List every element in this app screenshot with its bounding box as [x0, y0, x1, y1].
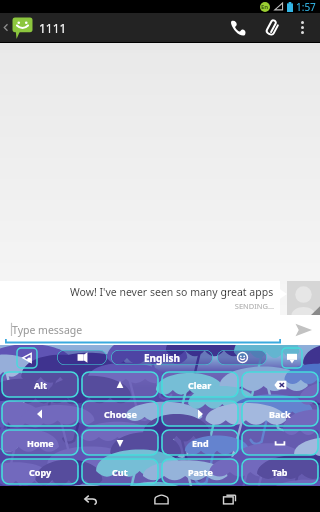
- staticText: Type message: [12, 323, 83, 337]
- button[interactable]: English: [111, 350, 213, 365]
- button[interactable]: More options: [289, 13, 315, 42]
- staticText: 1111: [39, 20, 67, 36]
- button[interactable]: Keyboard: [282, 348, 302, 368]
- staticText: Choose: [104, 408, 137, 420]
- button[interactable]: right: [162, 401, 238, 426]
- button[interactable]: Copy: [2, 459, 78, 484]
- button[interactable]: Clear: [162, 372, 238, 397]
- staticText: 1:57: [296, 0, 316, 13]
- button[interactable]: Tab: [242, 459, 318, 484]
- button[interactable]: left: [2, 401, 78, 426]
- staticText: Alt: [34, 379, 47, 391]
- staticText: Tab: [272, 466, 288, 478]
- staticText: Cut: [112, 466, 128, 478]
- button[interactable]: Send: [286, 315, 320, 345]
- staticText: Back: [269, 408, 291, 420]
- button[interactable]: Choose: [82, 401, 158, 426]
- button[interactable]: End: [162, 430, 238, 455]
- button[interactable]: face: [217, 350, 267, 365]
- button[interactable]: Recent apps: [201, 486, 257, 512]
- button[interactable]: Call: [221, 13, 255, 42]
- button[interactable]: Attach: [255, 13, 289, 42]
- button[interactable]: Paste: [162, 459, 238, 484]
- staticText: Paste: [188, 466, 213, 478]
- button[interactable]: Cut: [82, 459, 158, 484]
- button[interactable]: down: [82, 430, 158, 455]
- button[interactable]: Type message: [5, 315, 281, 345]
- staticText: Copy: [29, 466, 52, 478]
- staticText: English: [144, 351, 180, 365]
- button[interactable]: bksp: [242, 372, 318, 397]
- button[interactable]: Home: [133, 486, 189, 512]
- button[interactable]: Settings: [17, 348, 37, 368]
- staticText: End: [192, 437, 209, 449]
- button[interactable]: up: [82, 372, 158, 397]
- button[interactable]: space: [242, 430, 318, 455]
- button[interactable]: Back: [63, 486, 119, 512]
- button[interactable]: Alt: [2, 372, 78, 397]
- button[interactable]: 1111: [0, 13, 69, 42]
- staticText: SENDING...: [12, 301, 274, 311]
- button[interactable]: Home: [2, 430, 78, 455]
- staticText: Clear: [188, 379, 212, 391]
- staticText: Home: [27, 437, 54, 449]
- button[interactable]: Back: [242, 401, 318, 426]
- staticText: Wow! I've never seen so many great apps: [70, 285, 274, 299]
- button[interactable]: speaker: [57, 350, 107, 365]
- staticText: En: [261, 3, 269, 11]
